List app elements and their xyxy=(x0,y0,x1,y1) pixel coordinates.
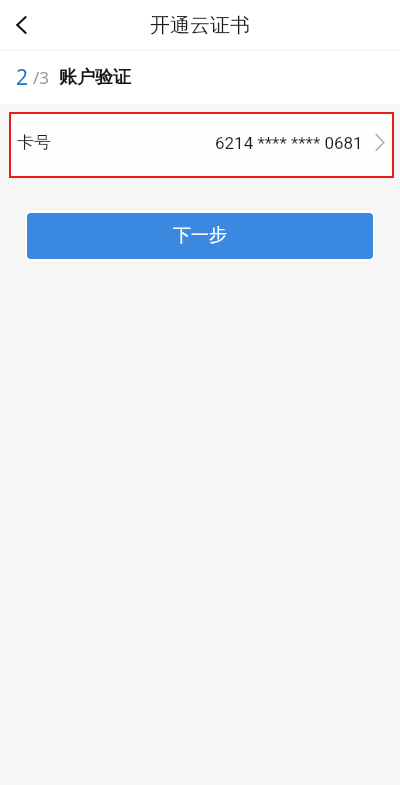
staticText: 开通云证书 xyxy=(150,13,250,38)
staticText: 账户验证 xyxy=(59,66,131,89)
staticText: /3 xyxy=(33,66,50,89)
button[interactable]: 卡号 xyxy=(9,112,394,178)
staticText: 下一步 xyxy=(173,224,227,247)
staticText: 卡号 xyxy=(17,132,51,153)
button[interactable]: 下一步 xyxy=(25,211,375,261)
staticText: 6214 **** **** 0681 xyxy=(215,133,363,153)
button[interactable]: Back xyxy=(0,0,42,50)
staticText: 2 xyxy=(16,63,29,92)
